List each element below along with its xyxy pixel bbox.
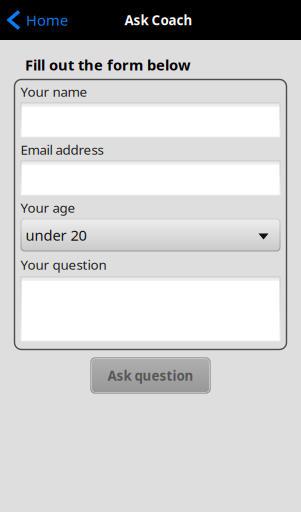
button[interactable]: under 20 xyxy=(20,218,280,251)
staticText: Your name xyxy=(20,83,87,100)
staticText: Email address xyxy=(20,141,103,158)
staticText: Home xyxy=(26,10,68,30)
staticText: Ask Coach xyxy=(124,11,192,29)
staticText: Your question xyxy=(20,256,106,273)
staticText: under 20 xyxy=(25,225,86,245)
staticText: Your age xyxy=(20,199,75,216)
staticText: Ask question xyxy=(107,367,193,384)
button[interactable]: Ask question xyxy=(90,357,210,393)
staticText: Fill out the form below xyxy=(25,55,191,74)
button[interactable]: Home xyxy=(0,0,76,40)
